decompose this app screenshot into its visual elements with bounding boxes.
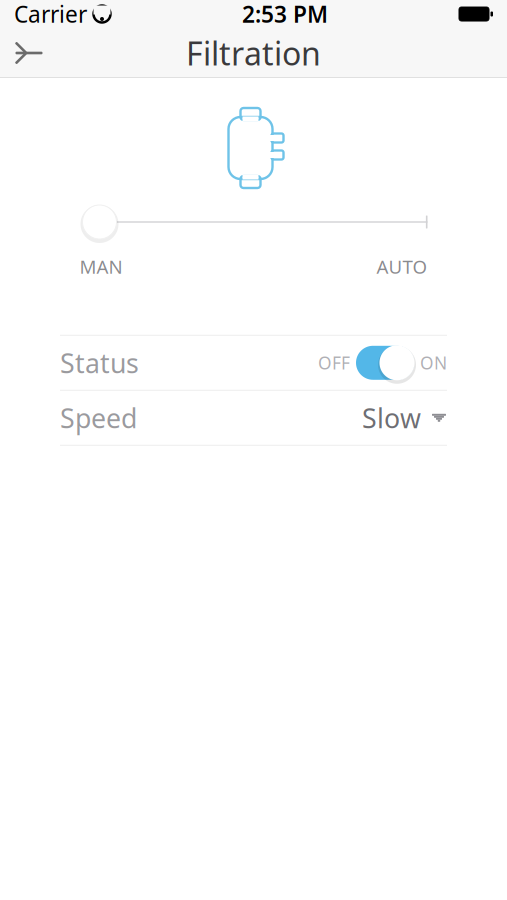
staticText: Status <box>60 345 139 380</box>
button[interactable]: Speed <box>60 391 447 445</box>
button[interactable]: Back <box>0 28 58 78</box>
staticText: 2:53 PM <box>242 0 328 29</box>
staticText: Filtration <box>186 32 321 74</box>
staticText: Speed <box>60 400 137 435</box>
button[interactable]: Mode slider, manual <box>79 202 119 242</box>
staticText: MAN <box>79 254 122 279</box>
staticText: AUTO <box>376 254 427 279</box>
staticText: Carrier <box>14 0 87 29</box>
staticText: OFF <box>318 351 350 374</box>
staticText: ON <box>420 351 447 374</box>
button[interactable]: Status <box>60 336 447 390</box>
staticText: Slow <box>362 400 421 435</box>
